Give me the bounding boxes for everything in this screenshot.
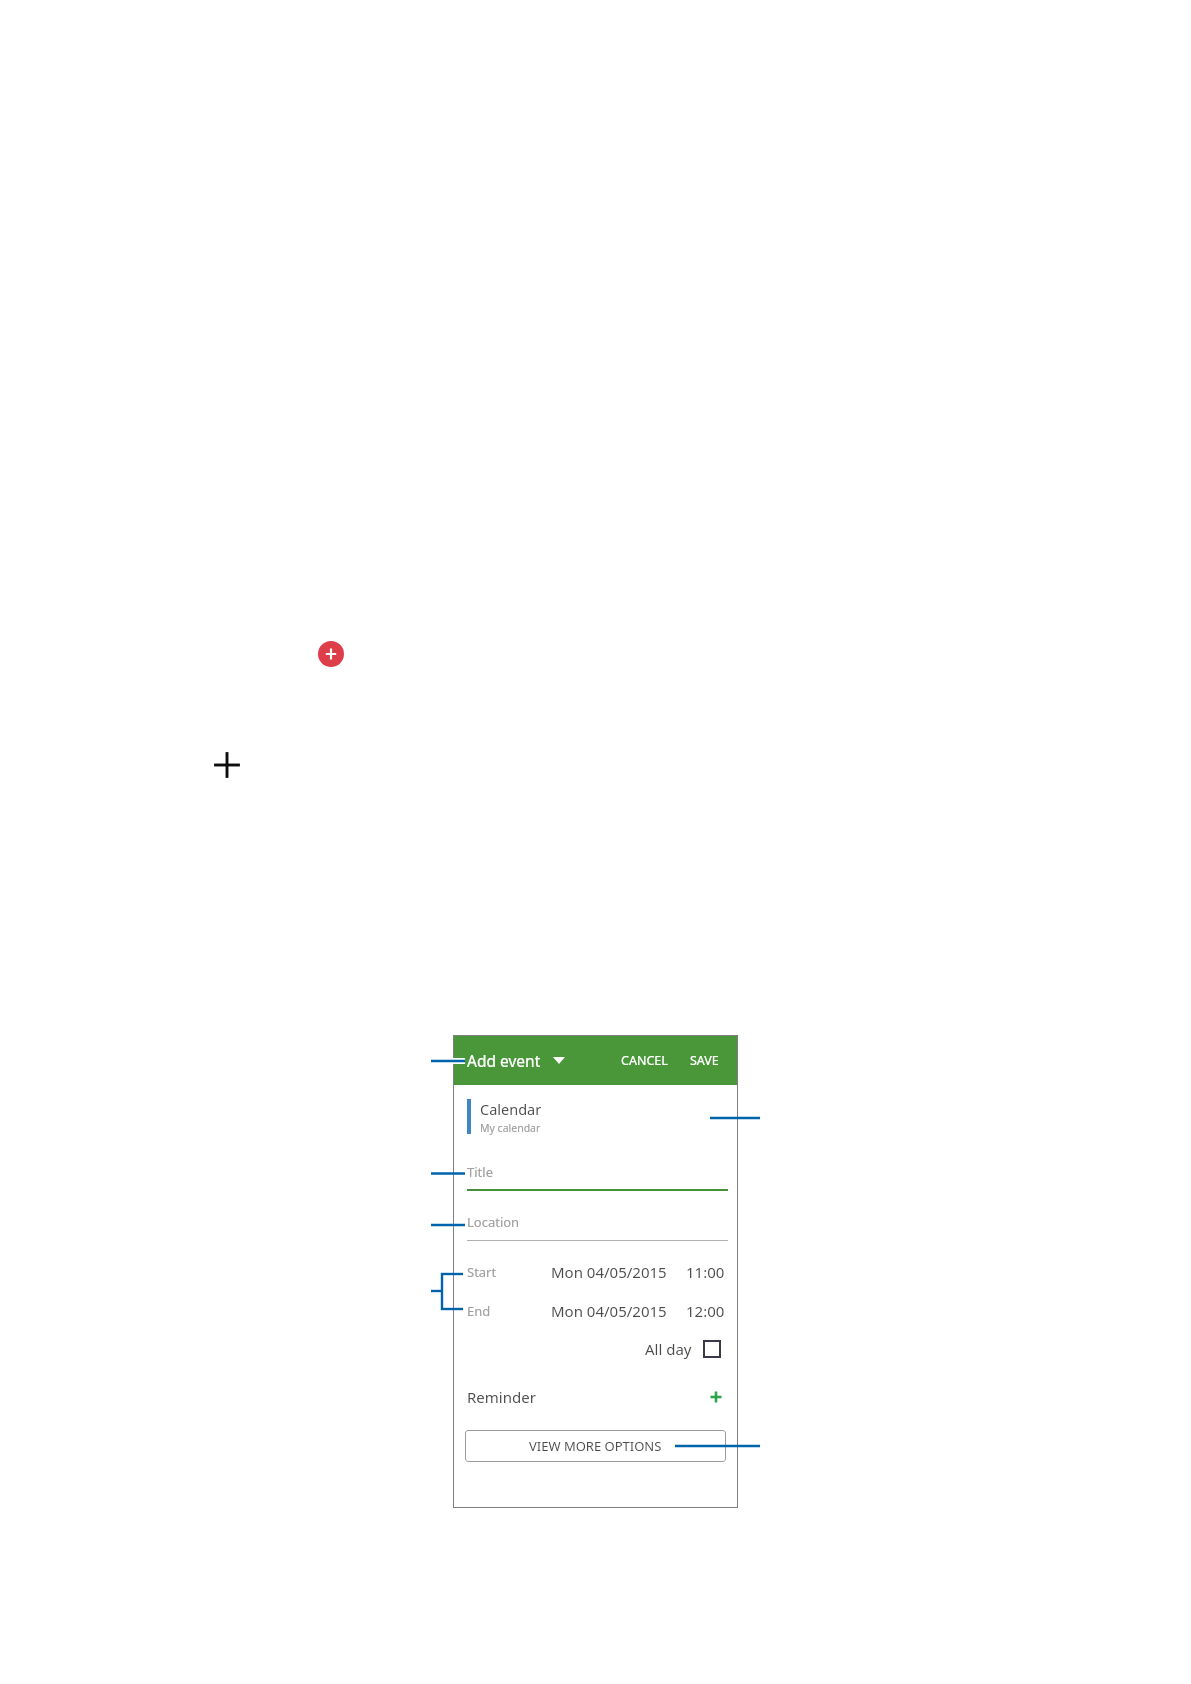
staticText: Title — [467, 1163, 493, 1181]
staticText: Add event — [467, 1050, 541, 1071]
button[interactable]: CANCEL — [621, 1052, 668, 1069]
staticText: Mon 04/05/2015 — [551, 1262, 667, 1282]
button[interactable]: End — [453, 1035, 711, 1061]
staticText: VIEW MORE OPTIONS — [529, 1437, 662, 1455]
button[interactable]: Add event — [318, 641, 344, 667]
staticText: Reminder — [467, 1387, 536, 1407]
button[interactable]: VIEW MORE OPTIONS — [465, 1430, 726, 1462]
button[interactable]: Start — [453, 1035, 711, 1061]
staticText: Location — [467, 1213, 520, 1231]
staticText: Calendar — [480, 1099, 542, 1119]
staticText: 11:00 — [686, 1262, 725, 1282]
staticText: 12:00 — [686, 1301, 725, 1321]
button[interactable]: Add event — [467, 1050, 565, 1071]
staticText: All day — [645, 1339, 692, 1359]
button[interactable]: Calendar — [453, 1095, 738, 1139]
staticText: Start — [467, 1263, 497, 1281]
staticText: Mon 04/05/2015 — [551, 1301, 667, 1321]
button[interactable]: All day — [645, 1339, 721, 1359]
staticText: My calendar — [480, 1121, 541, 1135]
button[interactable]: SAVE — [690, 1052, 719, 1069]
staticText: End — [467, 1302, 491, 1320]
button[interactable]: Add reminder — [705, 1386, 727, 1408]
